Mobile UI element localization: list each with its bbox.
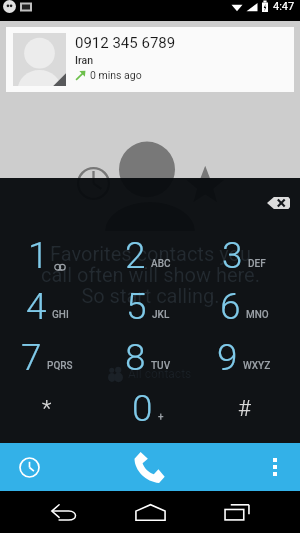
button[interactable]: 5 [100,281,200,332]
button[interactable]: 4 [0,281,100,332]
staticText: Favorites contacts you call often will s… [41,242,260,308]
button[interactable]: Home [127,491,173,533]
button[interactable]: Recent apps [214,491,260,533]
button[interactable]: 0912 345 6789 [6,27,294,92]
staticText: # [238,396,251,422]
staticText: ABC [151,258,171,270]
staticText: DEF [248,258,266,270]
staticText: 4 [26,285,47,328]
staticText: GHI [52,309,69,321]
button[interactable]: 0 [100,383,200,434]
button[interactable]: 7 [0,332,100,383]
staticText: 7 [21,336,42,379]
staticText: All contacts [128,367,192,381]
staticText: + [158,411,164,423]
button[interactable]: * [0,383,100,434]
staticText: TUV [151,360,171,372]
button[interactable]: Backspace [261,192,295,214]
button[interactable]: 8 [100,332,200,383]
staticText: 9 [217,336,238,379]
staticText: 2 [125,234,146,277]
staticText: PQRS [47,360,73,372]
staticText: 3 [222,234,243,277]
staticText: 5 [126,285,147,328]
button[interactable]: Call history [12,450,46,484]
staticText: WXYZ [243,360,271,372]
staticText: 8 [125,336,146,379]
button[interactable]: More options [258,450,292,484]
button[interactable]: 6 [200,281,300,332]
button[interactable]: 2 [100,230,200,281]
staticText: 4:47 [273,0,295,13]
staticText: MNO [246,309,269,321]
button[interactable]: Call [122,443,178,491]
staticText: 0912 345 6789 [75,34,176,52]
button[interactable]: # [200,383,300,434]
staticText: 0 mins ago [90,69,142,81]
button[interactable]: 1 [0,230,100,281]
staticText: 1 [28,234,49,277]
staticText: 0 [132,387,153,430]
staticText: 6 [220,285,241,328]
staticText: Iran [75,54,94,66]
button[interactable]: 9 [200,332,300,383]
button[interactable]: Back [41,491,87,533]
staticText: JKL [152,309,170,321]
staticText: * [42,396,52,422]
button[interactable]: 3 [200,230,300,281]
